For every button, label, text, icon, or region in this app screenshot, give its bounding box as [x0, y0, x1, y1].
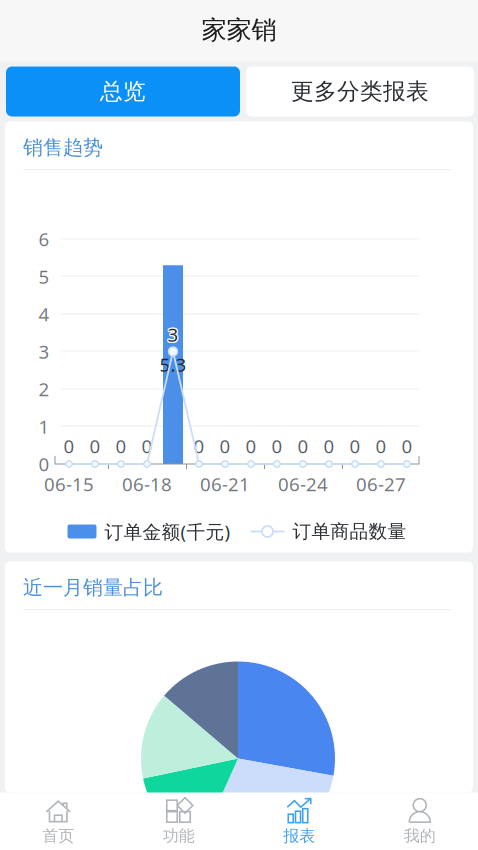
staticText: 首页: [42, 826, 74, 846]
staticText: 3: [167, 321, 178, 346]
staticText: 2: [38, 377, 49, 401]
staticText: 06-27: [356, 472, 406, 496]
staticText: 0: [245, 434, 256, 458]
staticText: 0: [219, 434, 230, 458]
button[interactable]: 我的: [359, 792, 478, 850]
staticText: 0: [63, 434, 74, 458]
staticText: 3: [38, 339, 49, 364]
button[interactable]: 更多分类报表: [246, 66, 474, 116]
staticText: 3: [166, 321, 177, 346]
staticText: 报表: [283, 826, 315, 846]
staticText: 0: [89, 434, 100, 458]
staticText: 06-21: [200, 472, 250, 496]
staticText: 更多分类报表: [291, 78, 429, 105]
staticText: 我的: [404, 826, 436, 846]
staticText: 06-15: [44, 472, 94, 496]
staticText: 3: [167, 323, 178, 348]
staticText: 3: [168, 323, 179, 348]
staticText: 3: [168, 321, 179, 346]
button[interactable]: 报表: [239, 792, 359, 850]
staticText: 家家销: [201, 14, 276, 45]
staticText: 0: [115, 434, 126, 458]
staticText: 订单商品数量: [292, 520, 406, 543]
staticText: 订单金额(千元): [104, 519, 230, 544]
staticText: 近一月销量占比: [23, 575, 163, 600]
button[interactable]: 总览: [6, 66, 240, 116]
staticText: 总览: [100, 78, 146, 105]
staticText: 0: [193, 434, 204, 458]
staticText: 4: [38, 302, 49, 326]
staticText: 销售趋势: [23, 135, 103, 160]
staticText: 0: [38, 452, 49, 476]
button[interactable]: 首页: [0, 792, 118, 850]
staticText: 0: [141, 434, 152, 458]
staticText: 6: [38, 227, 49, 251]
staticText: 0: [401, 434, 412, 458]
staticText: 0: [375, 434, 386, 458]
staticText: 5.3: [159, 352, 186, 377]
button[interactable]: 功能: [118, 792, 239, 850]
staticText: 0: [297, 434, 308, 458]
staticText: 0: [349, 434, 360, 458]
staticText: 3: [169, 322, 180, 347]
staticText: 06-24: [278, 472, 328, 496]
staticText: 0: [271, 434, 282, 458]
staticText: 06-18: [122, 472, 172, 496]
staticText: 0: [323, 434, 334, 458]
staticText: 1: [38, 414, 49, 439]
staticText: 3: [166, 323, 177, 348]
staticText: 3: [167, 322, 178, 347]
staticText: 功能: [163, 826, 195, 846]
staticText: 3: [166, 322, 177, 347]
staticText: 5: [38, 264, 49, 289]
